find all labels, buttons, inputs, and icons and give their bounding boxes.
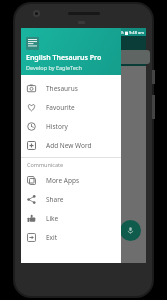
staticText: Add New Word bbox=[46, 141, 92, 150]
staticText: Communicate bbox=[27, 161, 64, 168]
button[interactable]: Thesaurus bbox=[21, 79, 121, 98]
button[interactable]: Favourite bbox=[21, 98, 121, 117]
button[interactable]: More Apps bbox=[21, 171, 121, 190]
staticText: Exit bbox=[46, 233, 58, 242]
button[interactable]: Exit bbox=[21, 228, 121, 247]
button[interactable]: Add New Word bbox=[21, 136, 121, 155]
staticText: Develop by EagleTech bbox=[26, 64, 82, 71]
staticText: Share bbox=[46, 195, 64, 204]
button[interactable]: Like bbox=[21, 209, 121, 228]
button[interactable]: English Thesaurus Pro bbox=[21, 28, 121, 75]
staticText: History bbox=[46, 122, 68, 131]
button[interactable]: Voice search bbox=[120, 220, 141, 241]
staticText: Favourite bbox=[46, 103, 75, 112]
staticText: 61% bbox=[116, 30, 124, 35]
button[interactable]: Share bbox=[21, 190, 121, 209]
staticText: Like bbox=[46, 214, 59, 223]
staticText: More Apps bbox=[46, 176, 80, 185]
staticText: 9:48 am bbox=[129, 30, 144, 35]
staticText: English Thesaurus Pro bbox=[26, 53, 102, 63]
staticText: Thesaurus bbox=[46, 84, 78, 93]
button[interactable]: History bbox=[21, 117, 121, 136]
